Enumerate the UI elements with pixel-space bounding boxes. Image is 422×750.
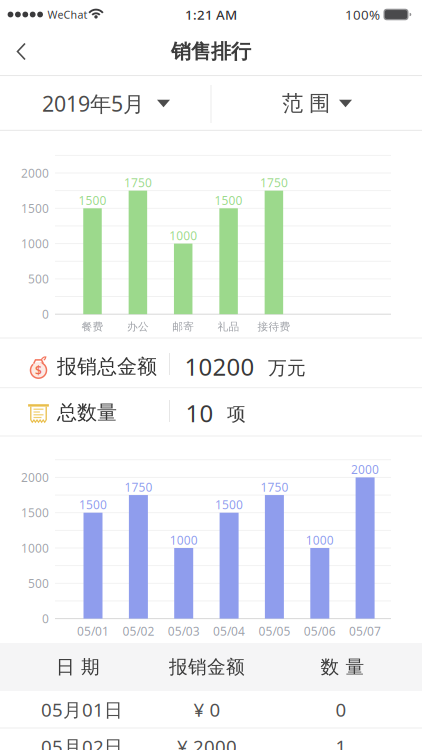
staticText: 1500 (215, 497, 243, 513)
staticText: 1000 (306, 532, 334, 548)
staticText: 项 (227, 402, 246, 425)
button[interactable]: 范 围 (217, 76, 417, 130)
staticText: 总数量 (57, 400, 117, 425)
staticText: $ (35, 362, 42, 378)
staticText: 报销金额 (169, 655, 245, 678)
staticText: 1500 (21, 200, 49, 216)
staticText: 1750 (124, 479, 152, 495)
staticText: 万元 (268, 356, 306, 379)
staticText: 1750 (260, 175, 288, 191)
staticText: 05/04 (213, 623, 245, 639)
staticText: 销售排行 (171, 39, 251, 64)
staticText: 2019年5月 (42, 89, 144, 118)
staticText: 范 围 (282, 90, 330, 117)
staticText: 邮寄 (172, 320, 194, 333)
staticText: 100% (345, 6, 380, 23)
staticText: 办公 (127, 320, 149, 333)
staticText: 礼品 (218, 320, 240, 333)
staticText: 1500 (78, 192, 106, 208)
staticText: 报销总金额 (57, 354, 157, 379)
staticText: 1500 (21, 505, 49, 521)
staticText: 0 (335, 697, 346, 722)
staticText: 1000 (170, 532, 198, 548)
staticText: 1000 (169, 228, 197, 243)
staticText: 05/07 (349, 623, 381, 639)
staticText: 05/06 (304, 623, 336, 639)
staticText: ¥ 2000 (177, 734, 237, 750)
staticText: 日 期 (56, 655, 100, 678)
staticText: 05/05 (258, 623, 290, 639)
staticText: 1750 (124, 175, 152, 191)
staticText: WeChat (47, 7, 87, 22)
staticText: 1000 (21, 236, 49, 251)
staticText: 1000 (21, 540, 49, 556)
staticText: 10 (185, 397, 213, 429)
staticText: 1:21 AM (185, 6, 237, 23)
staticText: 0 (42, 306, 49, 322)
staticText: 05月01日 (41, 697, 123, 722)
staticText: 10200 (184, 351, 254, 382)
button[interactable]: Back (4, 34, 38, 68)
staticText: 1 (335, 734, 346, 750)
staticText: 0 (42, 611, 49, 626)
staticText: 500 (28, 271, 49, 287)
staticText: 05月02日 (41, 734, 123, 750)
staticText: 05/02 (122, 623, 154, 639)
staticText: 05/03 (168, 623, 200, 639)
staticText: 1750 (260, 479, 288, 495)
staticText: 餐费 (81, 320, 103, 333)
staticText: ¥ 0 (193, 697, 220, 722)
staticText: 2000 (21, 165, 49, 181)
staticText: 500 (28, 575, 49, 591)
staticText: 数 量 (320, 655, 364, 678)
button[interactable]: 2019年5月 (6, 76, 206, 130)
staticText: 1500 (79, 497, 107, 513)
staticText: 1500 (215, 192, 243, 208)
staticText: 2000 (21, 469, 49, 485)
staticText: 接待费 (257, 320, 290, 333)
staticText: 2000 (351, 461, 379, 477)
staticText: 05/01 (77, 623, 109, 639)
